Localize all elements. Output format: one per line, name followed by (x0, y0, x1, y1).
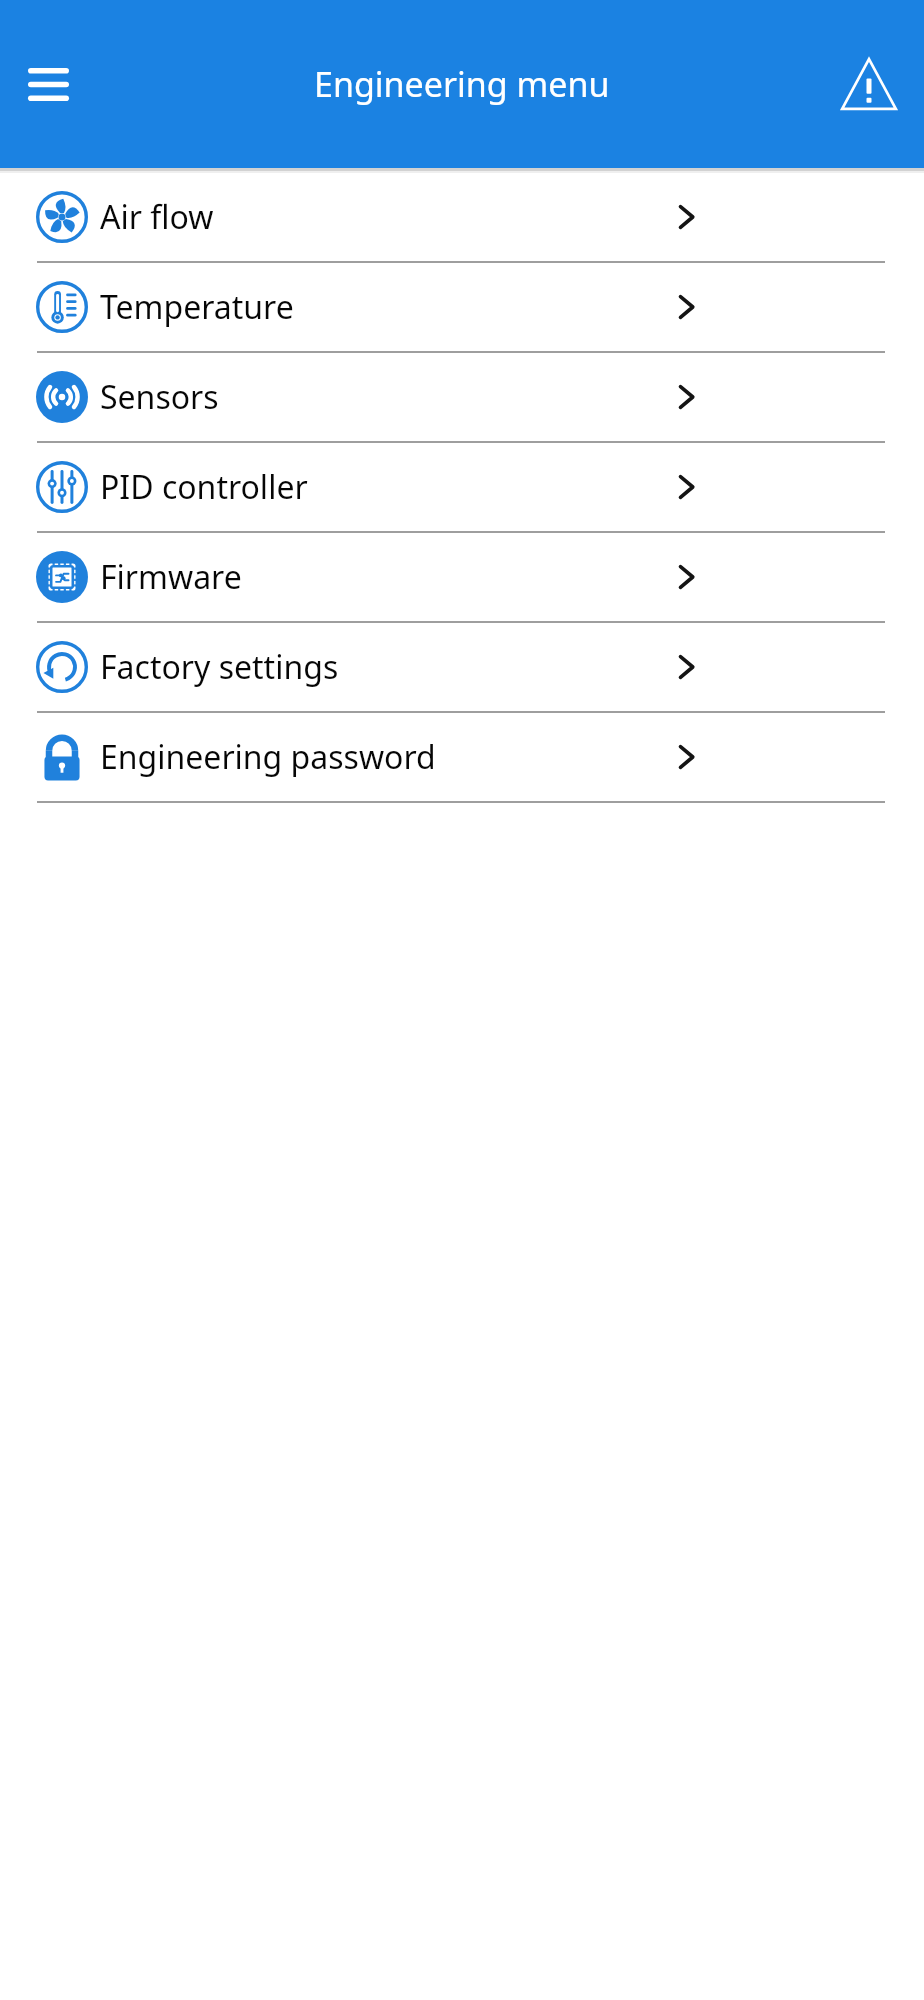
button[interactable]: Temperature (0, 263, 924, 351)
staticText: PID controller (100, 465, 308, 509)
staticText: Sensors (100, 375, 219, 419)
button[interactable]: Factory settings (0, 623, 924, 711)
staticText: Engineering password (100, 735, 436, 779)
button[interactable]: Air flow (0, 173, 924, 261)
staticText: Temperature (100, 285, 294, 329)
staticText: Firmware (100, 555, 242, 599)
button[interactable]: Firmware (0, 533, 924, 621)
button[interactable]: Warnings (834, 49, 904, 119)
staticText: Air flow (100, 195, 214, 239)
button[interactable]: PID controller (0, 443, 924, 531)
button[interactable]: Sensors (0, 353, 924, 441)
button[interactable]: Engineering password (0, 713, 924, 801)
button[interactable]: Open navigation menu (18, 52, 78, 116)
staticText: Factory settings (100, 645, 339, 689)
staticText: Engineering menu (314, 61, 610, 107)
